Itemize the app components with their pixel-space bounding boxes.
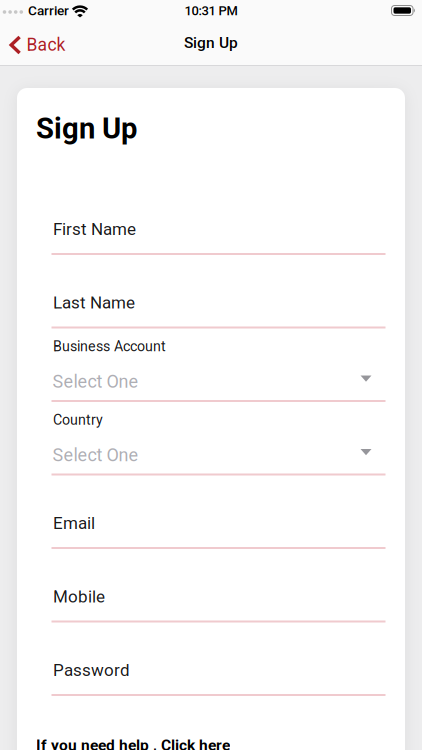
textField[interactable]: First Name — [51, 223, 385, 253]
staticText: Last Name — [51, 296, 165, 326]
button[interactable]: If you need help , Click here — [36, 736, 230, 750]
staticText: Back — [26, 34, 65, 55]
staticText: Sign Up — [36, 111, 137, 145]
staticText: Country — [53, 412, 103, 428]
staticText: If you need help , Click here — [36, 736, 230, 750]
staticText: Email — [53, 513, 95, 533]
staticText: Last Name — [53, 293, 135, 313]
staticText: Select One — [52, 444, 138, 466]
staticText: First Name — [53, 219, 136, 239]
staticText: Mobile — [53, 587, 105, 607]
staticText: Business Account — [53, 338, 166, 355]
textField[interactable]: Password — [51, 664, 385, 694]
textField[interactable]: Mobile — [51, 590, 385, 620]
staticText: First Name — [51, 223, 167, 253]
staticText: 10:31 PM — [184, 3, 237, 18]
button[interactable]: Back — [9, 32, 71, 58]
staticText: Mobile — [51, 590, 125, 620]
staticText: Select One — [52, 371, 138, 392]
staticText: Email — [51, 517, 110, 547]
button[interactable]: Select One — [51, 442, 385, 473]
staticText: Password — [51, 664, 155, 694]
button[interactable]: Select One — [51, 369, 385, 400]
staticText: Password — [53, 660, 130, 680]
textField[interactable]: Email — [51, 517, 385, 547]
staticText: Sign Up — [184, 33, 238, 52]
textField[interactable]: Last Name — [51, 296, 385, 326]
staticText: Carrier — [28, 3, 69, 19]
